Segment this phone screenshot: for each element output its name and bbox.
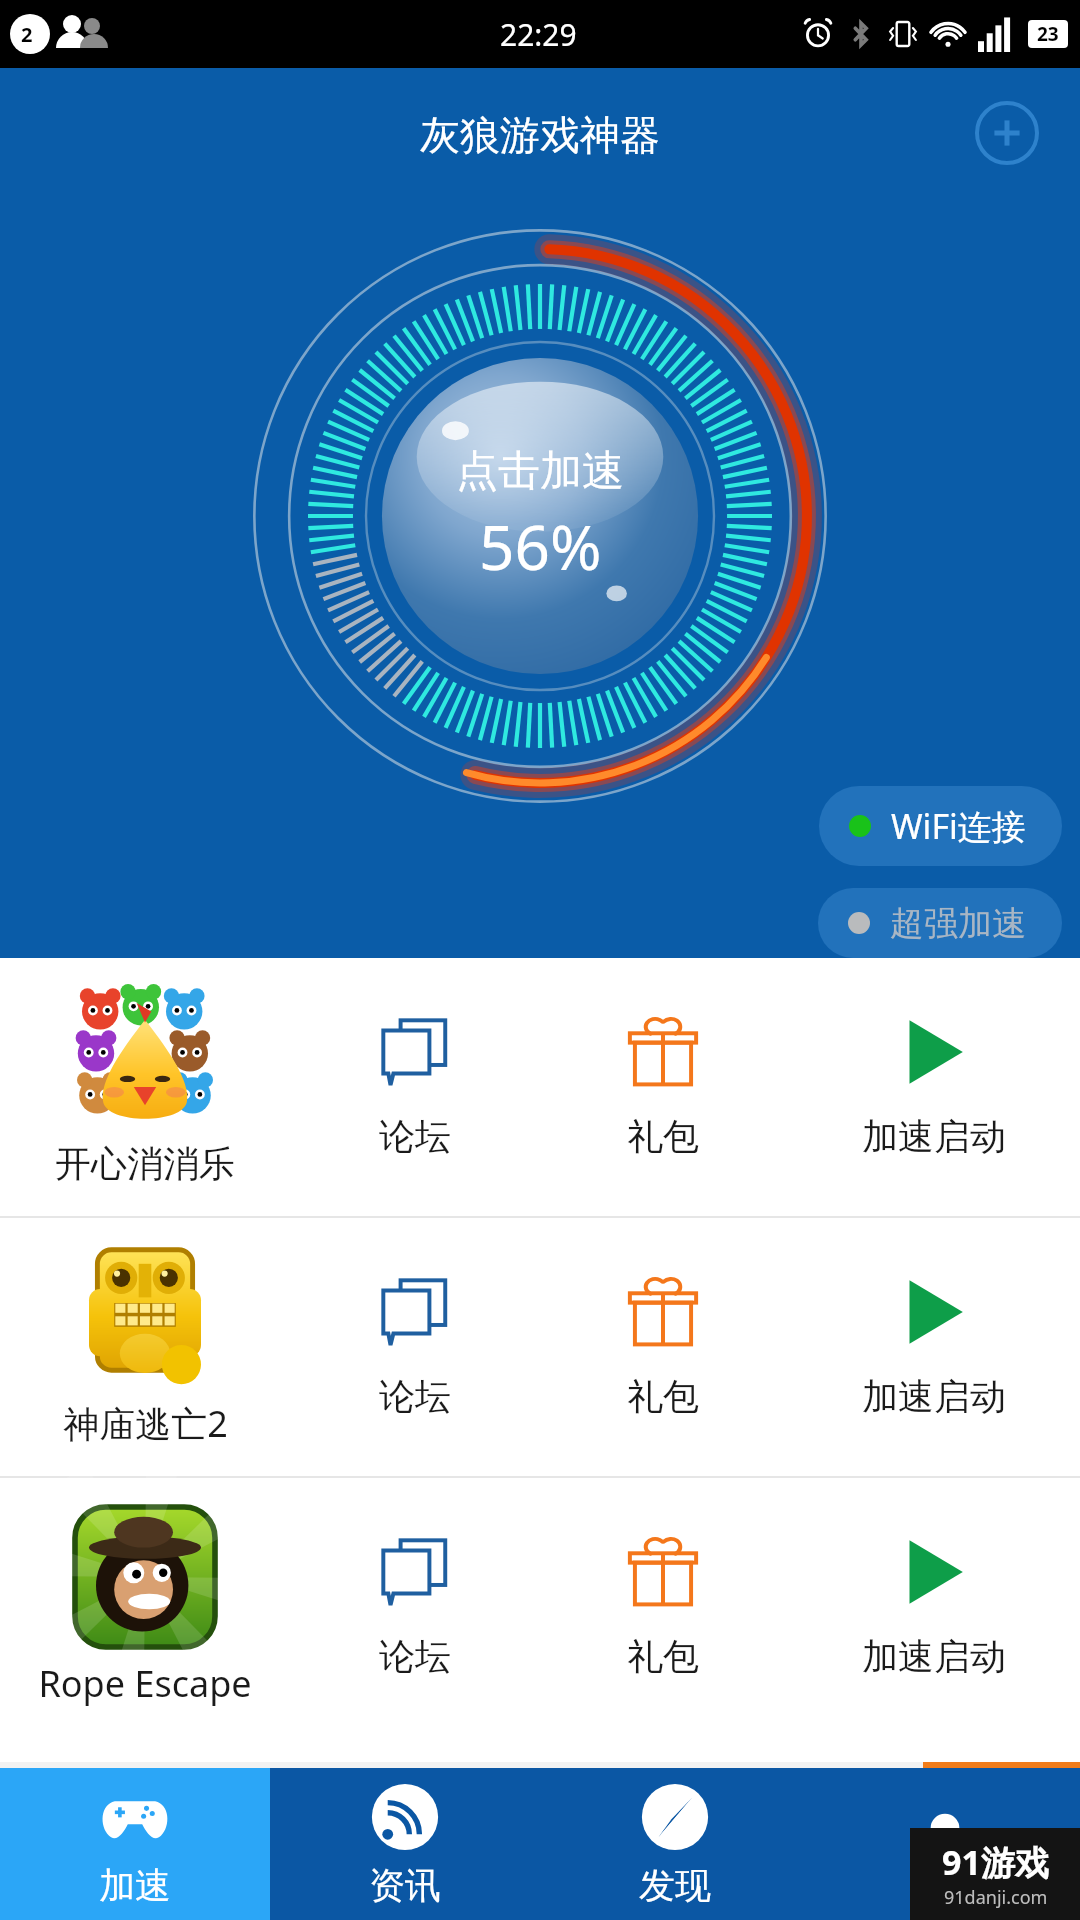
staticText: WiFi连接	[891, 803, 1026, 849]
button[interactable]: 神庙逃亡2	[0, 1218, 1080, 1476]
button[interactable]: 加速启动	[787, 1218, 1080, 1476]
staticText: 22:29	[500, 14, 577, 55]
button[interactable]: 论坛	[290, 958, 539, 1216]
button[interactable]: 礼包	[539, 1218, 787, 1476]
staticText: 资讯	[369, 1863, 441, 1908]
staticText: 23	[1037, 21, 1059, 47]
button[interactable]: 论坛	[290, 1478, 539, 1736]
staticText: 灰狼游戏神器	[420, 110, 660, 160]
staticText: 加速启动	[862, 1634, 1006, 1679]
button[interactable]: 资讯	[270, 1768, 540, 1920]
staticText: 神庙逃亡2	[63, 1399, 228, 1448]
button[interactable]: 超强加速	[818, 888, 1062, 958]
staticText: Rope Escape	[38, 1659, 252, 1708]
button[interactable]: 礼包	[539, 958, 787, 1216]
button[interactable]: 礼包	[539, 1478, 787, 1736]
staticText: 发现	[639, 1863, 711, 1908]
button[interactable]: 加速启动	[787, 958, 1080, 1216]
staticText: 加速	[99, 1863, 171, 1908]
staticText: 点击加速	[456, 445, 624, 498]
button[interactable]: 发现	[540, 1768, 810, 1920]
button[interactable]: 我的	[810, 1768, 1080, 1920]
button[interactable]: 加速启动	[787, 1478, 1080, 1736]
button[interactable]: 开心消消乐	[0, 958, 1080, 1216]
staticText: 礼包	[627, 1374, 699, 1419]
staticText: 论坛	[379, 1114, 451, 1159]
staticText: 91游戏	[942, 1839, 1049, 1885]
staticText: 开心消消乐	[55, 1141, 235, 1186]
staticText: 2	[21, 21, 33, 48]
staticText: 超强加速	[890, 902, 1026, 945]
button[interactable]: 点击加速 56%	[250, 226, 830, 806]
staticText: 论坛	[379, 1634, 451, 1679]
button[interactable]: WiFi连接	[819, 786, 1062, 866]
staticText: 91danji.com	[944, 1885, 1048, 1910]
button[interactable]: 论坛	[290, 1218, 539, 1476]
staticText: 加速启动	[862, 1114, 1006, 1159]
staticText: 论坛	[379, 1374, 451, 1419]
staticText: 加速启动	[862, 1374, 1006, 1419]
staticText: 礼包	[627, 1114, 699, 1159]
button[interactable]: Add	[974, 100, 1040, 166]
staticText: 礼包	[627, 1634, 699, 1679]
button[interactable]: Rope Escape	[0, 1478, 1080, 1736]
button[interactable]: 加速	[0, 1768, 270, 1920]
staticText: 56%	[479, 504, 602, 588]
